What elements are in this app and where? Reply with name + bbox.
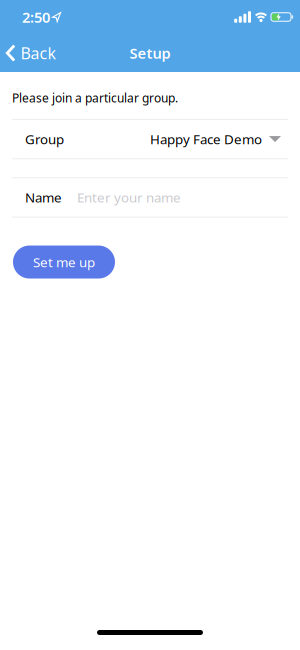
staticText: Set me up [33, 253, 95, 271]
staticText: Setup [129, 43, 170, 63]
staticText: Please join a particular group. [12, 90, 178, 106]
staticText: Group [25, 130, 64, 148]
staticText: Happy Face Demo [150, 130, 262, 148]
button[interactable]: Back [0, 42, 56, 64]
staticText: Enter your name [77, 188, 181, 206]
staticText: Back [20, 42, 56, 64]
button[interactable]: Name [0, 178, 300, 217]
staticText: 2:50 [22, 7, 50, 27]
button[interactable]: Set me up [13, 245, 115, 278]
button[interactable]: Group [0, 120, 300, 158]
staticText: Name [25, 188, 62, 206]
